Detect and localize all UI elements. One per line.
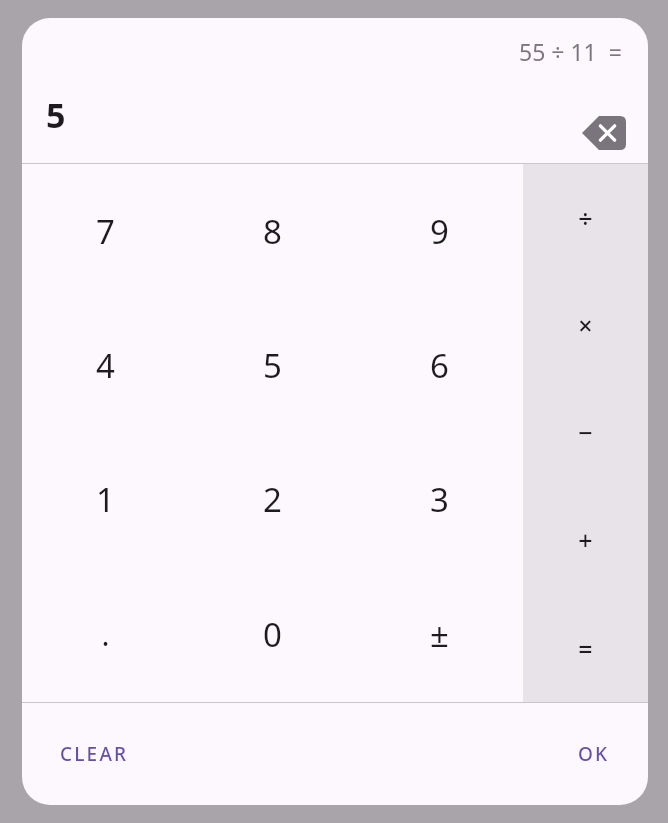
button[interactable]: + bbox=[523, 486, 648, 594]
button[interactable]: 7 bbox=[22, 164, 189, 298]
staticText: 5 bbox=[46, 92, 66, 138]
staticText: 4 bbox=[96, 343, 115, 388]
button[interactable]: 3 bbox=[356, 432, 523, 567]
button[interactable]: 1 bbox=[22, 432, 189, 567]
staticText: 55 ÷ 11 = bbox=[519, 36, 622, 67]
staticText: × bbox=[578, 308, 593, 342]
staticText: 7 bbox=[96, 209, 115, 254]
staticText: 0 bbox=[263, 612, 282, 657]
staticText: 2 bbox=[263, 477, 282, 522]
staticText: 8 bbox=[263, 209, 282, 254]
button[interactable]: = bbox=[523, 594, 648, 702]
button[interactable]: ± bbox=[356, 567, 523, 702]
staticText: ÷ bbox=[578, 201, 593, 235]
button[interactable]: CLEAR bbox=[46, 731, 143, 777]
button[interactable]: 2 bbox=[189, 432, 356, 567]
staticText: ± bbox=[430, 612, 449, 657]
staticText: 1 bbox=[96, 477, 115, 522]
staticText: + bbox=[578, 523, 593, 557]
button[interactable]: Backspace bbox=[577, 110, 631, 156]
staticText: 5 bbox=[263, 343, 282, 388]
button[interactable]: 4 bbox=[22, 298, 189, 432]
button[interactable]: 8 bbox=[189, 164, 356, 298]
button[interactable]: OK bbox=[564, 731, 624, 777]
staticText: − bbox=[578, 415, 593, 449]
staticText: 3 bbox=[430, 477, 449, 522]
button[interactable]: 6 bbox=[356, 298, 523, 432]
button[interactable]: 0 bbox=[189, 567, 356, 702]
button[interactable]: × bbox=[523, 271, 648, 378]
button[interactable]: − bbox=[523, 378, 648, 486]
staticText: = bbox=[578, 631, 593, 665]
button[interactable]: . bbox=[22, 567, 189, 702]
staticText: OK bbox=[578, 741, 610, 767]
button[interactable]: 9 bbox=[356, 164, 523, 298]
staticText: CLEAR bbox=[60, 741, 129, 767]
staticText: 9 bbox=[430, 209, 449, 254]
staticText: . bbox=[101, 614, 110, 655]
button[interactable]: ÷ bbox=[523, 164, 648, 271]
staticText: 6 bbox=[430, 343, 449, 388]
button[interactable]: 5 bbox=[189, 298, 356, 432]
